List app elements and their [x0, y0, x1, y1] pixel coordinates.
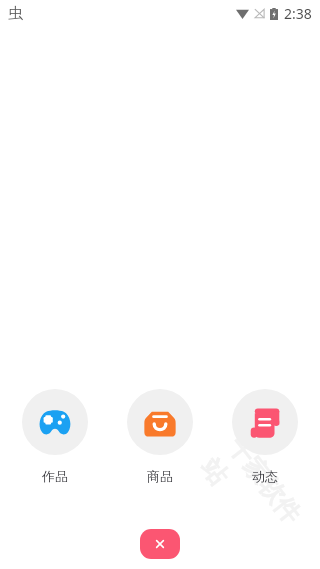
- button[interactable]: 商品: [127, 389, 193, 484]
- staticText: 2:38: [284, 4, 312, 23]
- staticText: 千家软件站: [194, 432, 320, 569]
- staticText: 商品: [147, 468, 173, 484]
- staticText: 动态: [252, 468, 278, 484]
- button[interactable]: 动态: [232, 389, 298, 484]
- staticText: 虫: [8, 4, 23, 23]
- staticText: 作品: [42, 468, 68, 484]
- button[interactable]: 作品: [22, 389, 88, 484]
- button[interactable]: Close: [140, 529, 180, 559]
